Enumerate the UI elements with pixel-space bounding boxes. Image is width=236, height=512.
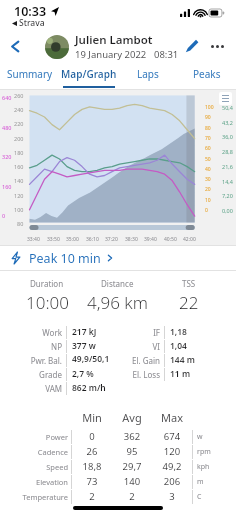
staticText: 33:40 [27,236,40,243]
button[interactable]: Laps [118,62,177,89]
staticText: 180 [14,149,24,156]
staticText: 206 [152,475,192,488]
staticText: 7,20 [222,192,233,199]
staticText: Summary [7,67,53,81]
staticText: 43,2 [222,119,233,126]
staticText: 120 [152,445,192,458]
button[interactable]: Summary [0,62,59,89]
staticText: 0 [205,207,208,214]
staticText: 22 [179,291,199,314]
staticText: 0 [2,212,6,219]
staticText: 0,00 [222,207,233,214]
staticText: 2 [72,490,112,503]
staticText: 26 [72,445,112,458]
staticText: 38:30 [125,236,138,243]
staticText: 3 [152,490,192,503]
staticText: 29,7 [112,460,152,473]
staticText: 40 [205,166,211,173]
staticText: 4,96 km [87,291,148,314]
button[interactable]: Peaks [177,62,236,89]
staticText: Grade [20,369,62,380]
staticText: 1,18 [170,326,187,338]
staticText: 100 [14,206,24,213]
staticText: Peak 10 min [29,250,101,267]
staticText: Min [72,410,112,425]
staticText: NP [20,341,62,352]
staticText: 11 m [170,368,191,380]
staticText: 217 kJ [72,326,97,338]
staticText: 50 [205,156,211,163]
staticText: 19 January 2022 [75,48,147,61]
staticText: 37:20 [105,236,118,243]
staticText: Cadence [16,447,68,457]
staticText: 36,0 [222,133,233,140]
staticText: 10 [205,197,211,204]
staticText: IF [122,327,160,338]
staticText: 640 [2,94,12,101]
staticText: 200 [14,135,24,142]
staticText: 144 m [170,354,195,366]
staticText: 39:40 [144,236,157,243]
staticText: 49,9/50,1 % [72,353,114,367]
button[interactable]: Chart legend [219,92,232,105]
staticText: 2 [112,490,152,503]
staticText: Duration [30,278,64,289]
staticText: Pwr. Bal. [20,355,62,366]
staticText: m [197,477,204,487]
staticText: VI [122,341,160,352]
staticText: w [197,432,203,442]
staticText: 10:00 [26,291,69,314]
staticText: 0 [72,430,112,443]
staticText: 33:50 [47,236,60,243]
staticText: 36:10 [86,236,99,243]
staticText: 674 [152,430,192,443]
staticText: rpm [197,447,211,457]
staticText: 120 [14,192,24,199]
staticText: 80 [17,220,24,227]
staticText: 140 [14,177,24,184]
staticText: Distance [101,278,134,289]
staticText: 1,04 [170,340,187,352]
button[interactable]: Peak 10 min [0,246,236,270]
staticText: Speed [16,462,68,472]
staticText: 35:00 [66,236,79,243]
staticText: 320 [2,153,12,160]
staticText: 73 [72,475,112,488]
staticText: 18,8 [72,460,112,473]
staticText: 20 [205,186,211,193]
button[interactable]: More options [204,33,230,59]
staticText: 90 [205,114,211,121]
staticText: El. Gain [122,355,160,366]
staticText: Strava [19,17,45,29]
staticText: 95 [112,445,152,458]
staticText: 70 [205,135,211,142]
button[interactable]: Back [0,30,30,62]
staticText: 362 [112,430,152,443]
staticText: Laps [137,67,159,81]
staticText: 14,4 [222,178,233,185]
staticText: Elevation [16,477,68,487]
staticText: Avg [112,410,152,425]
staticText: 260 [14,92,24,99]
staticText: 240 [14,106,24,113]
staticText: 50,4 [222,104,233,111]
staticText: 480 [2,124,12,131]
staticText: 377 w [72,340,96,352]
button[interactable]: Edit [178,33,204,59]
staticText: 160 [2,183,12,190]
staticText: TSS [182,278,196,289]
staticText: El. Loss [122,369,160,380]
staticText: 30 [205,176,211,183]
staticText: Work [20,327,62,338]
staticText: Julien Lambot [75,32,153,48]
staticText: 28,8 [222,148,233,155]
button[interactable]: Map/Graph [59,62,118,89]
staticText: kph [197,462,210,472]
staticText: 60 [205,145,211,152]
staticText: 49,2 [152,460,192,473]
button[interactable] [45,35,69,59]
staticText: 40:50 [164,236,177,243]
staticText: 10:33 [14,3,47,20]
staticText: 21,6 [222,163,233,170]
staticText: Map/Graph [61,67,117,81]
